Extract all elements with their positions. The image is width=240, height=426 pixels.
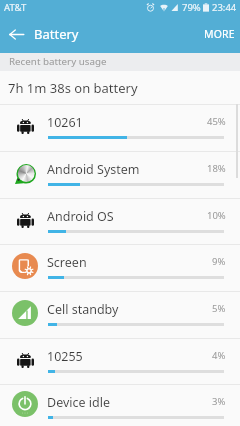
button[interactable]: Cell standby bbox=[0, 292, 240, 338]
staticText: 79% bbox=[182, 1, 201, 14]
staticText: AT&T bbox=[4, 1, 27, 14]
button[interactable]: Device idle bbox=[0, 385, 240, 426]
staticText: Android System bbox=[47, 161, 140, 178]
staticText: 45% bbox=[207, 115, 226, 128]
button[interactable]: Navigate up bbox=[0, 18, 32, 50]
staticText: Cell standby bbox=[47, 301, 119, 318]
staticText: Recent battery usage bbox=[9, 55, 107, 68]
button[interactable]: Screen bbox=[0, 245, 240, 291]
button[interactable]: 10255 bbox=[0, 339, 240, 384]
staticText: 5% bbox=[212, 302, 226, 315]
staticText: 18% bbox=[207, 162, 226, 175]
staticText: 10% bbox=[207, 209, 226, 222]
button[interactable]: Android System bbox=[0, 152, 240, 198]
staticText: 10261 bbox=[47, 114, 83, 131]
staticText: 23:44 bbox=[212, 1, 237, 14]
staticText: 9% bbox=[212, 255, 226, 268]
staticText: MORE bbox=[204, 27, 235, 41]
staticText: Battery bbox=[34, 25, 79, 43]
staticText: Screen bbox=[47, 254, 87, 271]
staticText: 10255 bbox=[47, 348, 83, 365]
button[interactable]: 10261 bbox=[0, 105, 240, 151]
staticText: Android OS bbox=[47, 208, 114, 225]
staticText: 4% bbox=[212, 349, 226, 362]
staticText: 7h 1m 38s on battery bbox=[8, 79, 138, 97]
staticText: 3% bbox=[212, 395, 226, 408]
staticText: Device idle bbox=[47, 394, 110, 411]
button[interactable]: MORE bbox=[196, 19, 240, 49]
button[interactable]: Android OS bbox=[0, 199, 240, 244]
button[interactable]: 7h 1m 38s on battery bbox=[0, 71, 240, 104]
